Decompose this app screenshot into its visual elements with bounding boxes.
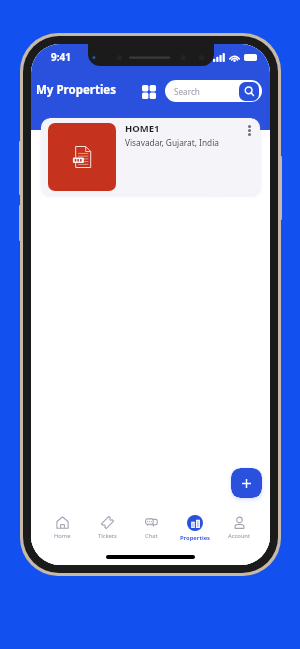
button[interactable]: Search [165, 80, 262, 102]
staticText: My Properties [36, 82, 116, 98]
button[interactable]: Tickets [85, 509, 129, 547]
staticText: 9:41 [51, 50, 71, 64]
staticText: Chat [145, 532, 158, 540]
button[interactable]: More options [241, 122, 257, 138]
button[interactable]: Add property [231, 468, 262, 498]
staticText: Account [228, 532, 251, 540]
staticText: Tickets [98, 532, 117, 540]
button[interactable]: Account [217, 509, 261, 547]
staticText: Visavadar, Gujarat, India [125, 137, 219, 148]
button[interactable]: Grid view [136, 79, 162, 105]
staticText: HOME1 [125, 122, 160, 135]
button[interactable]: Properties [173, 509, 217, 547]
staticText: Search [174, 86, 200, 97]
button[interactable]: Home [40, 509, 85, 547]
staticText: Home [54, 532, 71, 540]
staticText: Properties [180, 534, 211, 542]
button[interactable]: Chat [129, 509, 173, 547]
button[interactable]: HOME1 [41, 118, 260, 195]
